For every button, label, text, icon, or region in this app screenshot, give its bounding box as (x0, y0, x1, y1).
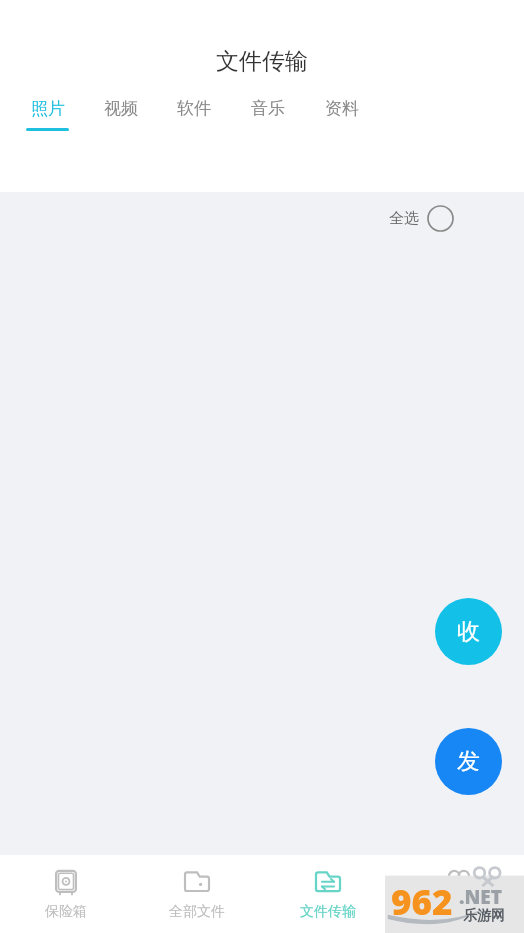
button[interactable]: 全选 (385, 203, 458, 234)
button[interactable]: 软件 (172, 98, 215, 131)
button[interactable]: Receive files (435, 598, 502, 665)
button[interactable]: 文件传输 (262, 855, 393, 933)
staticText: 我的 (445, 903, 473, 921)
staticText: 全部文件 (169, 903, 225, 921)
staticText: 文件传输 (300, 903, 356, 921)
button[interactable]: 视频 (99, 98, 142, 131)
button[interactable]: 我的 (393, 855, 524, 933)
button[interactable]: 资料 (320, 98, 363, 131)
staticText: 发 (457, 747, 480, 776)
staticText: 视频 (104, 98, 138, 119)
button[interactable]: Send files (435, 728, 502, 795)
staticText: 音乐 (251, 98, 285, 119)
staticText: 962 (391, 878, 453, 926)
button[interactable]: 保险箱 (0, 855, 131, 933)
staticText: .NET (459, 884, 502, 910)
button[interactable]: 音乐 (246, 98, 289, 131)
button[interactable]: 全部文件 (131, 855, 262, 933)
staticText: 照片 (31, 98, 65, 119)
staticText: 文件传输 (216, 47, 308, 76)
staticText: 收 (457, 617, 480, 646)
staticText: 资料 (325, 98, 359, 119)
staticText: 保险箱 (45, 903, 87, 921)
staticText: 全选 (389, 209, 419, 228)
staticText: 软件 (177, 98, 211, 119)
button[interactable]: 照片 (26, 98, 69, 131)
staticText: 乐游网 (463, 907, 505, 925)
